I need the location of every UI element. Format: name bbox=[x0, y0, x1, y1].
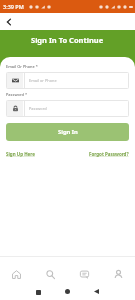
button[interactable]: Sign Up Here bbox=[6, 151, 35, 157]
staticText: Forgot Password? bbox=[89, 151, 129, 157]
button[interactable]: Email or Phone bbox=[6, 72, 129, 89]
button[interactable]: Search bbox=[33, 261, 67, 288]
button[interactable]: Forgot Password? bbox=[89, 151, 129, 157]
staticText: Password bbox=[29, 106, 47, 111]
staticText: Email Or Phone * bbox=[6, 64, 38, 69]
staticText: Sign In bbox=[58, 128, 78, 136]
staticText: 3:39 PM bbox=[3, 3, 24, 10]
staticText: Sign Up Here bbox=[6, 151, 35, 157]
button[interactable]: Home bbox=[0, 261, 33, 288]
staticText: Email or Phone bbox=[29, 78, 57, 83]
staticText: Password * bbox=[6, 92, 28, 97]
button[interactable]: Password bbox=[6, 100, 129, 117]
button[interactable]: Back bbox=[1, 14, 17, 30]
button[interactable]: Sign In bbox=[6, 123, 129, 141]
button[interactable]: Messages bbox=[67, 261, 101, 288]
staticText: Sign In To Continue bbox=[31, 35, 104, 45]
button[interactable]: Profile bbox=[101, 261, 135, 288]
